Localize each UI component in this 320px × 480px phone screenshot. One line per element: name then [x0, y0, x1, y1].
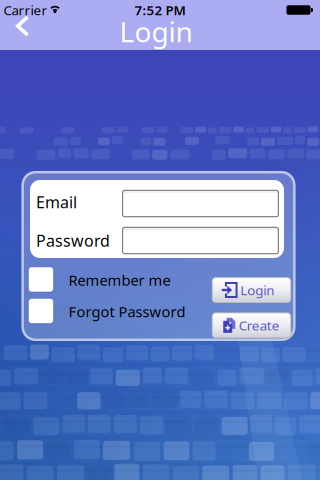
staticText: Forgot Password — [68, 302, 185, 321]
staticText: Password — [36, 230, 110, 251]
staticText: Carrier — [3, 1, 47, 19]
staticText: Login — [119, 13, 192, 50]
staticText: Remember me — [68, 270, 170, 290]
button[interactable]: Back — [11, 15, 33, 37]
button[interactable]: Remember me — [29, 266, 199, 293]
button[interactable]: Create — [212, 312, 291, 338]
staticText: Create — [239, 316, 280, 334]
staticText: 7:52 PM — [134, 1, 185, 19]
button[interactable]: Forgot Password — [29, 298, 199, 325]
staticText: Login — [240, 281, 274, 299]
button[interactable]: Login — [212, 277, 291, 303]
staticText: Email — [36, 191, 77, 213]
